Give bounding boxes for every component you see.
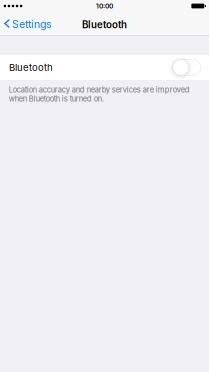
staticText: Bluetooth [9, 62, 53, 73]
button[interactable]: Settings [0, 12, 57, 35]
staticText: Location accuracy and nearby services ar… [9, 85, 190, 103]
staticText: Bluetooth [82, 19, 127, 31]
button[interactable]: Bluetooth, off [173, 59, 201, 76]
staticText: 10:00 [96, 2, 113, 10]
staticText: Settings [12, 18, 52, 30]
